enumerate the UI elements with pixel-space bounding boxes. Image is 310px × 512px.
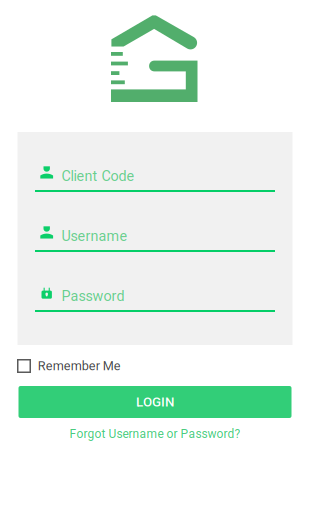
staticText: LOGIN [136,394,174,410]
staticText: Username [62,228,128,244]
button[interactable]: Remember Me [0,359,310,373]
staticText: Remember Me [38,359,121,373]
staticText: Password [62,288,125,304]
button[interactable]: Forgot Username or Password? [69,425,240,443]
button[interactable]: LOGIN [18,386,291,418]
staticText: Client Code [62,168,135,184]
staticText: Forgot Username or Password? [69,427,240,441]
